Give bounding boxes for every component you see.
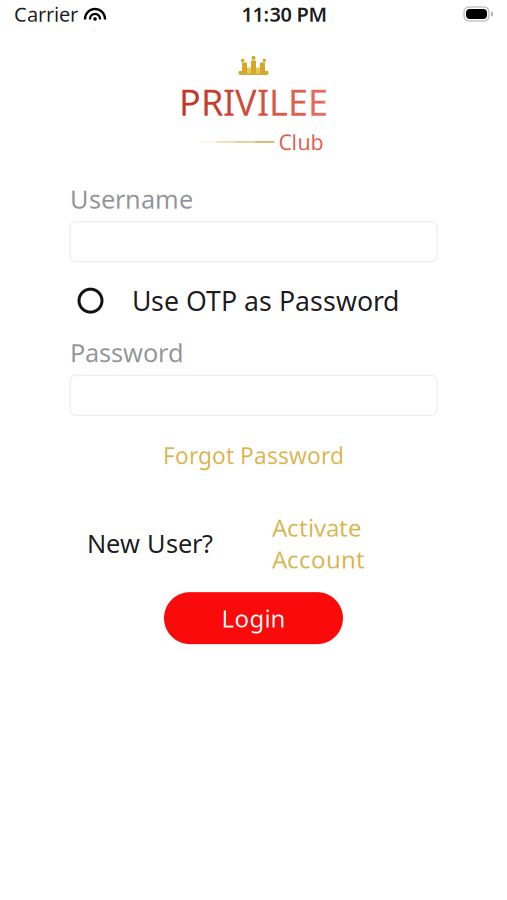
button[interactable]: Use OTP as Password	[70, 283, 437, 319]
staticText: Activate Account	[272, 511, 365, 575]
staticText: V	[235, 78, 257, 126]
staticText: 11:30 PM	[241, 1, 327, 27]
staticText: E	[288, 78, 308, 126]
staticText: E	[308, 78, 328, 126]
staticText: P	[179, 78, 201, 126]
staticText: R	[201, 78, 223, 126]
staticText: I	[257, 78, 269, 126]
button[interactable]: Activate Account	[272, 507, 365, 579]
staticText: Password	[70, 336, 184, 369]
staticText: Username	[70, 182, 193, 216]
staticText: Club	[278, 128, 323, 156]
staticText: Login	[221, 602, 285, 634]
staticText: New User?	[87, 526, 213, 560]
staticText: Use OTP as Password	[132, 283, 399, 318]
staticText: Carrier	[14, 1, 78, 27]
staticText: I	[223, 78, 235, 126]
button[interactable]: Forgot Password	[70, 435, 437, 475]
button[interactable]: Login	[164, 592, 343, 644]
staticText: L	[269, 78, 288, 126]
staticText: Forgot Password	[163, 440, 344, 470]
